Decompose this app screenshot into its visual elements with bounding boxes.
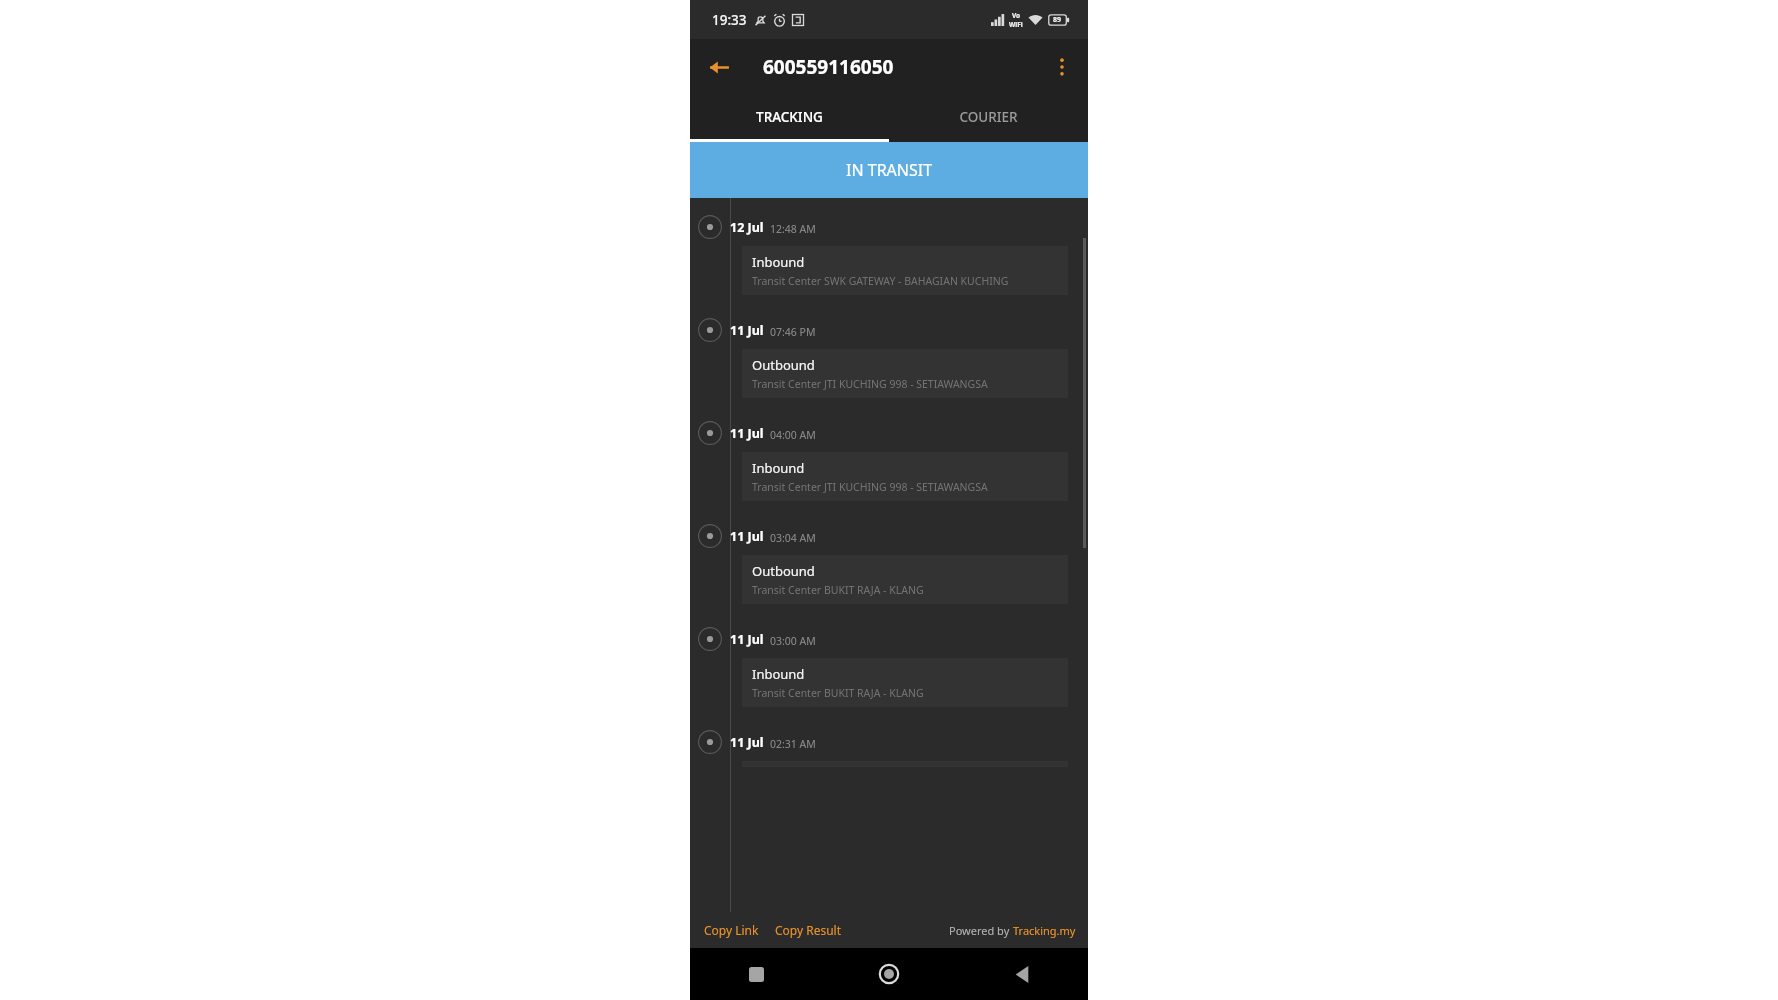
staticText: Powered by [949,923,1013,938]
staticText: 12 Jul [730,219,764,236]
staticText: WiFi [1009,20,1023,29]
button[interactable]: TRACKING [690,95,889,139]
staticText: 11 Jul [730,425,764,442]
staticText: 07:46 PM [770,325,816,339]
button[interactable]: 12 Jul [690,198,1088,301]
staticText: 04:00 AM [770,428,816,442]
button[interactable]: 11 Jul [690,507,1088,610]
button[interactable]: Home [822,948,955,1000]
button[interactable]: 11 Jul [690,404,1088,507]
staticText: Tracking.my [1013,923,1076,938]
staticText: Transit Center SWK GATEWAY - BAHAGIAN KU… [752,274,1009,288]
staticText: Vo [1012,11,1021,20]
staticText: 600559116050 [763,54,894,80]
staticText: Inbound [752,459,805,477]
staticText: Transit Center JTI KUCHING 998 - SETIAWA… [752,480,988,494]
button[interactable]: 11 Jul [690,610,1088,713]
staticText: 89 [1053,15,1062,25]
staticText: COURIER [959,108,1018,126]
staticText: 11 Jul [730,734,764,751]
staticText: 19:33 [712,11,747,29]
button[interactable]: Back [955,948,1088,1000]
staticText: Transit Center BUKIT RAJA - KLANG [752,583,924,597]
staticText: Copy Link [704,922,759,938]
button[interactable]: Copy Link [702,918,761,942]
staticText: 03:00 AM [770,634,816,648]
staticText: IN TRANSIT [846,159,933,181]
button[interactable]: 11 Jul [690,301,1088,404]
staticText: 11 Jul [730,322,764,339]
button[interactable]: Powered by [949,923,1076,938]
staticText: 02:31 AM [770,737,816,751]
staticText: Transit Center JTI KUCHING 998 - SETIAWA… [752,377,988,391]
staticText: Outbound [752,562,815,580]
staticText: Inbound [752,665,805,683]
staticText: Copy Result [775,922,842,938]
staticText: Transit Center BUKIT RAJA - KLANG [752,686,924,700]
staticText: 11 Jul [730,631,764,648]
button[interactable]: More options [1041,46,1083,88]
button[interactable]: 11 Jul [690,713,1088,767]
staticText: Inbound [752,253,805,271]
staticText: 12:48 AM [770,222,816,236]
staticText: 11 Jul [730,528,764,545]
button[interactable]: Recent apps [690,948,822,1000]
button[interactable]: COURIER [889,95,1088,139]
staticText: Outbound [752,356,815,374]
staticText: TRACKING [756,108,823,126]
staticText: 03:04 AM [770,531,816,545]
button[interactable]: Copy Result [773,918,844,942]
button[interactable]: Back [698,46,740,88]
